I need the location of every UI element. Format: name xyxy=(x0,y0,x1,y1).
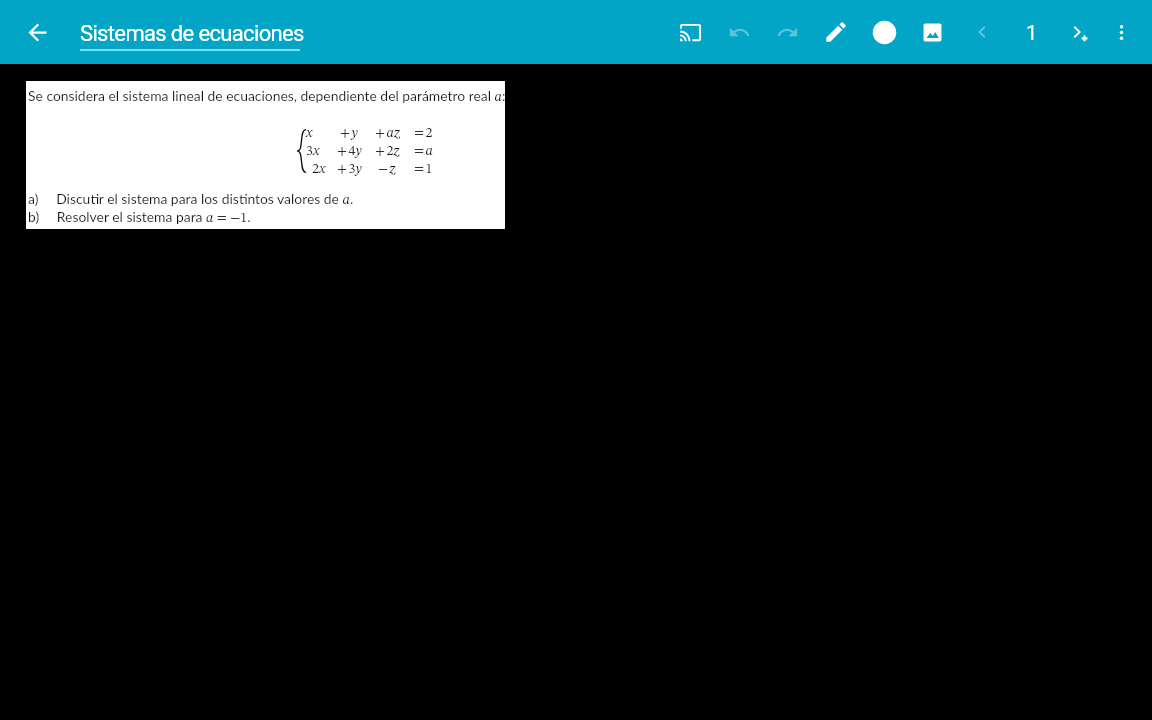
button[interactable]: Se considera el sistema lineal de ecuaci… xyxy=(26,81,505,229)
button[interactable]: 1 xyxy=(1006,0,1057,64)
staticText: x xyxy=(306,126,313,140)
button[interactable]: Back xyxy=(13,0,61,64)
button[interactable]: Sistemas de ecuaciones xyxy=(80,21,304,51)
staticText: 3x xyxy=(306,144,320,158)
staticText: Se considera el sistema lineal de ecuaci… xyxy=(28,87,506,104)
button[interactable]: Draw xyxy=(812,0,860,64)
staticText: Sistemas de ecuaciones xyxy=(80,21,304,47)
button[interactable]: Add page xyxy=(1057,0,1097,64)
button[interactable]: Previous page xyxy=(957,0,1006,64)
staticText: = 2 xyxy=(414,126,433,140)
staticText: b) Resolver el sistema para a = −1. xyxy=(28,208,251,225)
staticText: 2x xyxy=(312,162,326,176)
button[interactable]: More options xyxy=(1097,0,1137,64)
staticText: + 3y xyxy=(337,162,362,176)
staticText: − z xyxy=(378,162,396,176)
button[interactable]: Insert image xyxy=(908,0,957,64)
staticText: + 4y xyxy=(337,144,362,158)
staticText: 1 xyxy=(1026,21,1038,44)
staticText: + 2z xyxy=(375,144,400,158)
staticText: a) Discutir el sistema para los distinto… xyxy=(28,190,354,207)
button[interactable]: Pen colour xyxy=(860,0,908,64)
staticText: = 1 xyxy=(414,162,433,176)
button[interactable]: Cast xyxy=(666,0,715,64)
staticText: = a xyxy=(414,144,433,158)
staticText: + y xyxy=(340,126,358,140)
button[interactable]: Redo xyxy=(763,0,812,64)
button[interactable]: Undo xyxy=(715,0,763,64)
staticText: + az xyxy=(375,126,400,140)
